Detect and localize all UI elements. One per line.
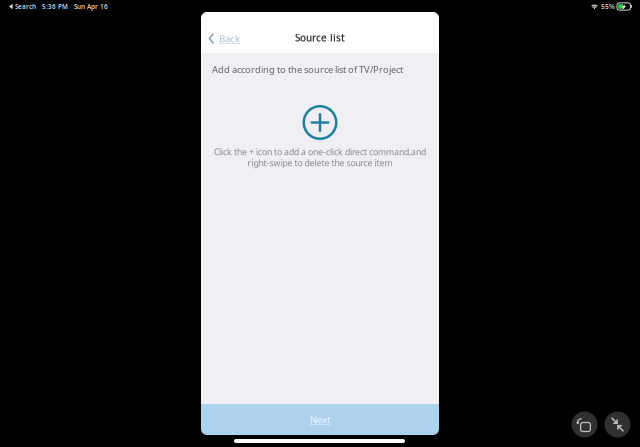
staticText: Search — [15, 2, 36, 11]
button[interactable]: Zoom out — [604, 411, 630, 437]
button[interactable]: Rotate — [571, 411, 597, 437]
staticText: Source list — [295, 31, 345, 44]
staticText: Sun Apr 16 — [74, 2, 108, 11]
staticText: Next — [310, 413, 330, 426]
button[interactable]: Back — [202, 27, 246, 50]
staticText: Back — [219, 32, 240, 45]
staticText: Add according to the source list of TV/P… — [212, 63, 403, 76]
button[interactable]: Search — [9, 2, 36, 11]
staticText: right-swipe to delete the source item — [247, 157, 392, 169]
staticText: 55% — [601, 2, 615, 11]
staticText: 5:36 PM — [42, 2, 68, 11]
button[interactable]: Next — [201, 404, 439, 435]
staticText: Click the + icon to add a one-click dire… — [214, 146, 426, 158]
button[interactable]: Add source — [302, 105, 337, 140]
